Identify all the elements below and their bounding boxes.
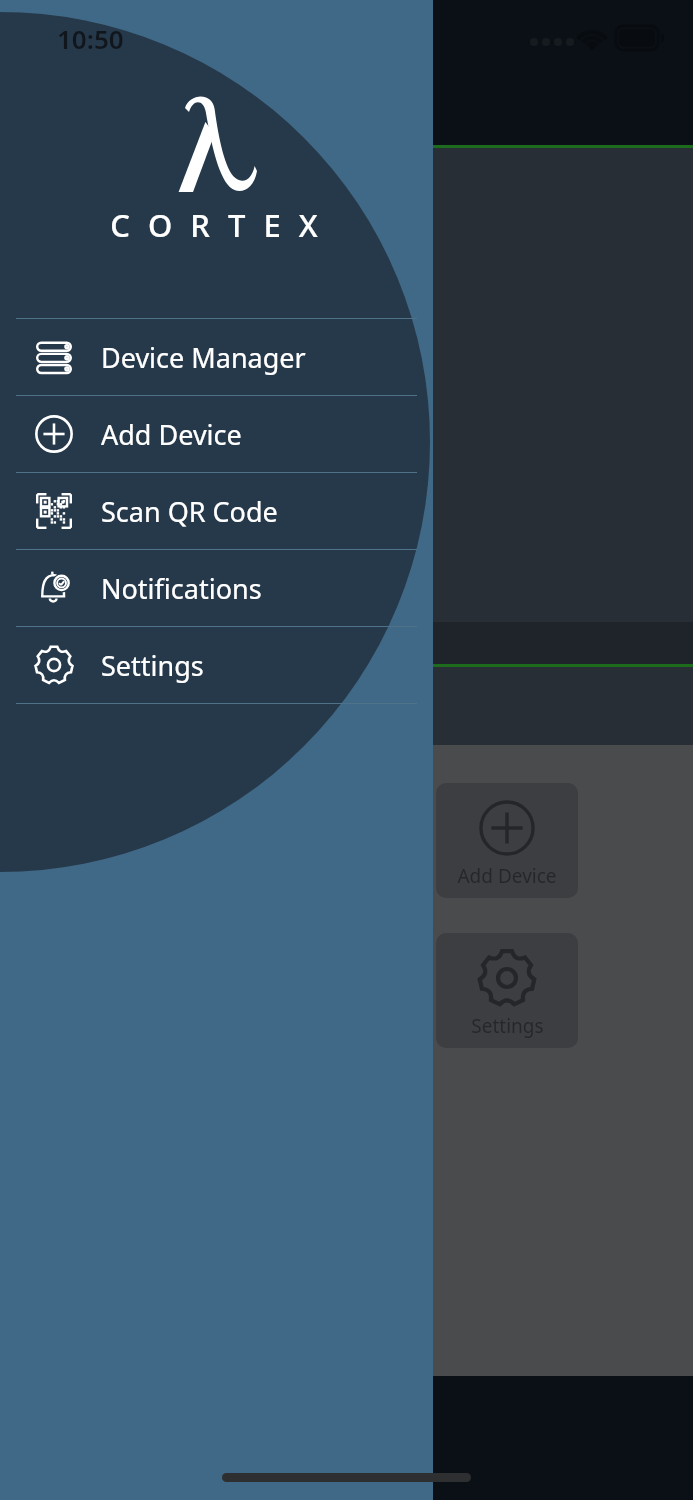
- staticText: Device Manager: [101, 339, 306, 376]
- staticText: Add Device: [101, 416, 242, 453]
- staticText: Settings: [471, 1013, 544, 1039]
- button[interactable]: Add Device: [0, 396, 433, 472]
- staticText: Notifications: [101, 570, 262, 607]
- button[interactable]: Settings: [0, 627, 433, 703]
- staticText: Settings: [101, 647, 204, 684]
- button[interactable]: Device Manager: [0, 319, 433, 395]
- staticText: 10:50: [57, 21, 124, 56]
- button[interactable]: Settings: [436, 933, 578, 1048]
- button[interactable]: Notifications: [0, 550, 433, 626]
- staticText: Add Device: [457, 863, 557, 889]
- staticText: C O R T E X: [110, 204, 323, 246]
- button[interactable]: Scan QR Code: [0, 473, 433, 549]
- staticText: Scan QR Code: [101, 493, 278, 530]
- button[interactable]: Add Device: [436, 783, 578, 898]
